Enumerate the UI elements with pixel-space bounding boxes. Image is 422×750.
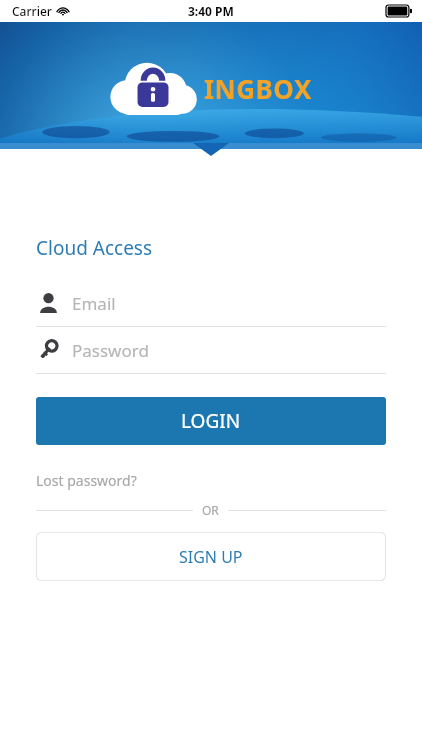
staticText: Carrier bbox=[12, 3, 52, 19]
button[interactable]: LOGIN bbox=[36, 397, 386, 445]
button[interactable]: SIGN UP bbox=[36, 532, 386, 581]
staticText: INGBOX bbox=[204, 71, 312, 106]
staticText: Email bbox=[72, 292, 116, 315]
staticText: LOGIN bbox=[181, 408, 241, 434]
button[interactable]: Lost password? bbox=[36, 469, 386, 491]
button[interactable]: Password bbox=[36, 327, 386, 373]
staticText: SIGN UP bbox=[179, 546, 243, 568]
staticText: Lost password? bbox=[36, 471, 137, 490]
staticText: OR bbox=[202, 502, 219, 518]
other: Password bbox=[36, 339, 60, 361]
button[interactable]: Email bbox=[36, 280, 386, 326]
other: Email bbox=[36, 292, 60, 314]
staticText: 3:40 PM bbox=[188, 3, 234, 19]
staticText: Password bbox=[72, 339, 149, 362]
staticText: Cloud Access bbox=[36, 235, 153, 261]
